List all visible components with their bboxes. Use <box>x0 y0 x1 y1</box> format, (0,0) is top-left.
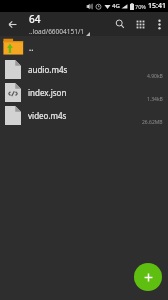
staticText: 1.34kB <box>147 96 163 103</box>
button[interactable]: Search <box>110 12 130 36</box>
staticText: 70% <box>135 3 146 10</box>
staticText: ..load/66004151/1 <box>29 27 85 36</box>
button[interactable]: audio.m4s <box>0 58 168 81</box>
button[interactable]: 64 <box>29 12 106 36</box>
staticText: 4.90kB <box>147 73 163 80</box>
staticText: audio.m4s <box>28 64 68 75</box>
staticText: 26.62MB <box>142 119 163 126</box>
staticText: 4G <box>112 2 120 10</box>
staticText: index.json <box>28 87 67 98</box>
staticText: video.m4s <box>28 110 67 121</box>
staticText: 64 <box>29 12 41 26</box>
button[interactable]: index.json <box>0 81 168 104</box>
button[interactable]: video.m4s <box>0 104 168 127</box>
button[interactable]: .. <box>0 36 168 58</box>
button[interactable]: Add <box>134 263 162 291</box>
staticText: .. <box>29 42 34 53</box>
staticText: 15:41 <box>148 1 166 11</box>
button[interactable]: Navigate up <box>0 12 24 36</box>
button[interactable]: More options <box>150 12 168 36</box>
button[interactable]: Grid view <box>130 12 150 36</box>
